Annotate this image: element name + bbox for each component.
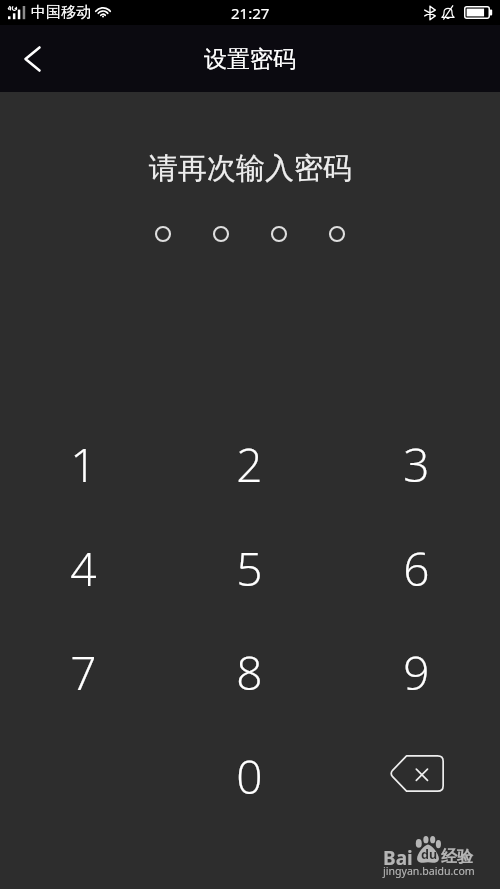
staticText: 4	[70, 537, 97, 600]
staticText: 21:27	[231, 3, 270, 23]
staticText: 经验	[441, 847, 473, 867]
button[interactable]: 4	[0, 516, 166, 620]
button[interactable]: 9	[333, 620, 500, 724]
staticText: 3	[403, 433, 430, 496]
button[interactable]: 5	[166, 516, 333, 620]
button[interactable]: 2	[166, 412, 333, 516]
button[interactable]: 7	[0, 620, 166, 724]
staticText: 中国移动	[31, 3, 91, 22]
button[interactable]: 1	[0, 412, 166, 516]
staticText: 7	[70, 641, 97, 704]
staticText: 请再次输入密码	[149, 150, 352, 187]
staticText: 9	[403, 641, 430, 704]
staticText: du	[421, 846, 438, 863]
staticText: 6	[403, 537, 430, 600]
staticText: 0	[236, 745, 263, 808]
button[interactable]: 8	[166, 620, 333, 724]
staticText: 设置密码	[204, 45, 296, 74]
staticText: 5	[236, 537, 263, 600]
staticText: 2	[236, 433, 263, 496]
staticText: 8	[236, 641, 263, 704]
button[interactable]: Back	[0, 25, 58, 92]
staticText: jingyan.baidu.com	[383, 864, 475, 878]
staticText: Bai	[383, 845, 413, 871]
staticText: 1	[70, 433, 97, 496]
button[interactable]: 0	[166, 724, 333, 828]
button[interactable]: 6	[333, 516, 500, 620]
button[interactable]: Backspace	[333, 724, 500, 828]
button[interactable]: 3	[333, 412, 500, 516]
